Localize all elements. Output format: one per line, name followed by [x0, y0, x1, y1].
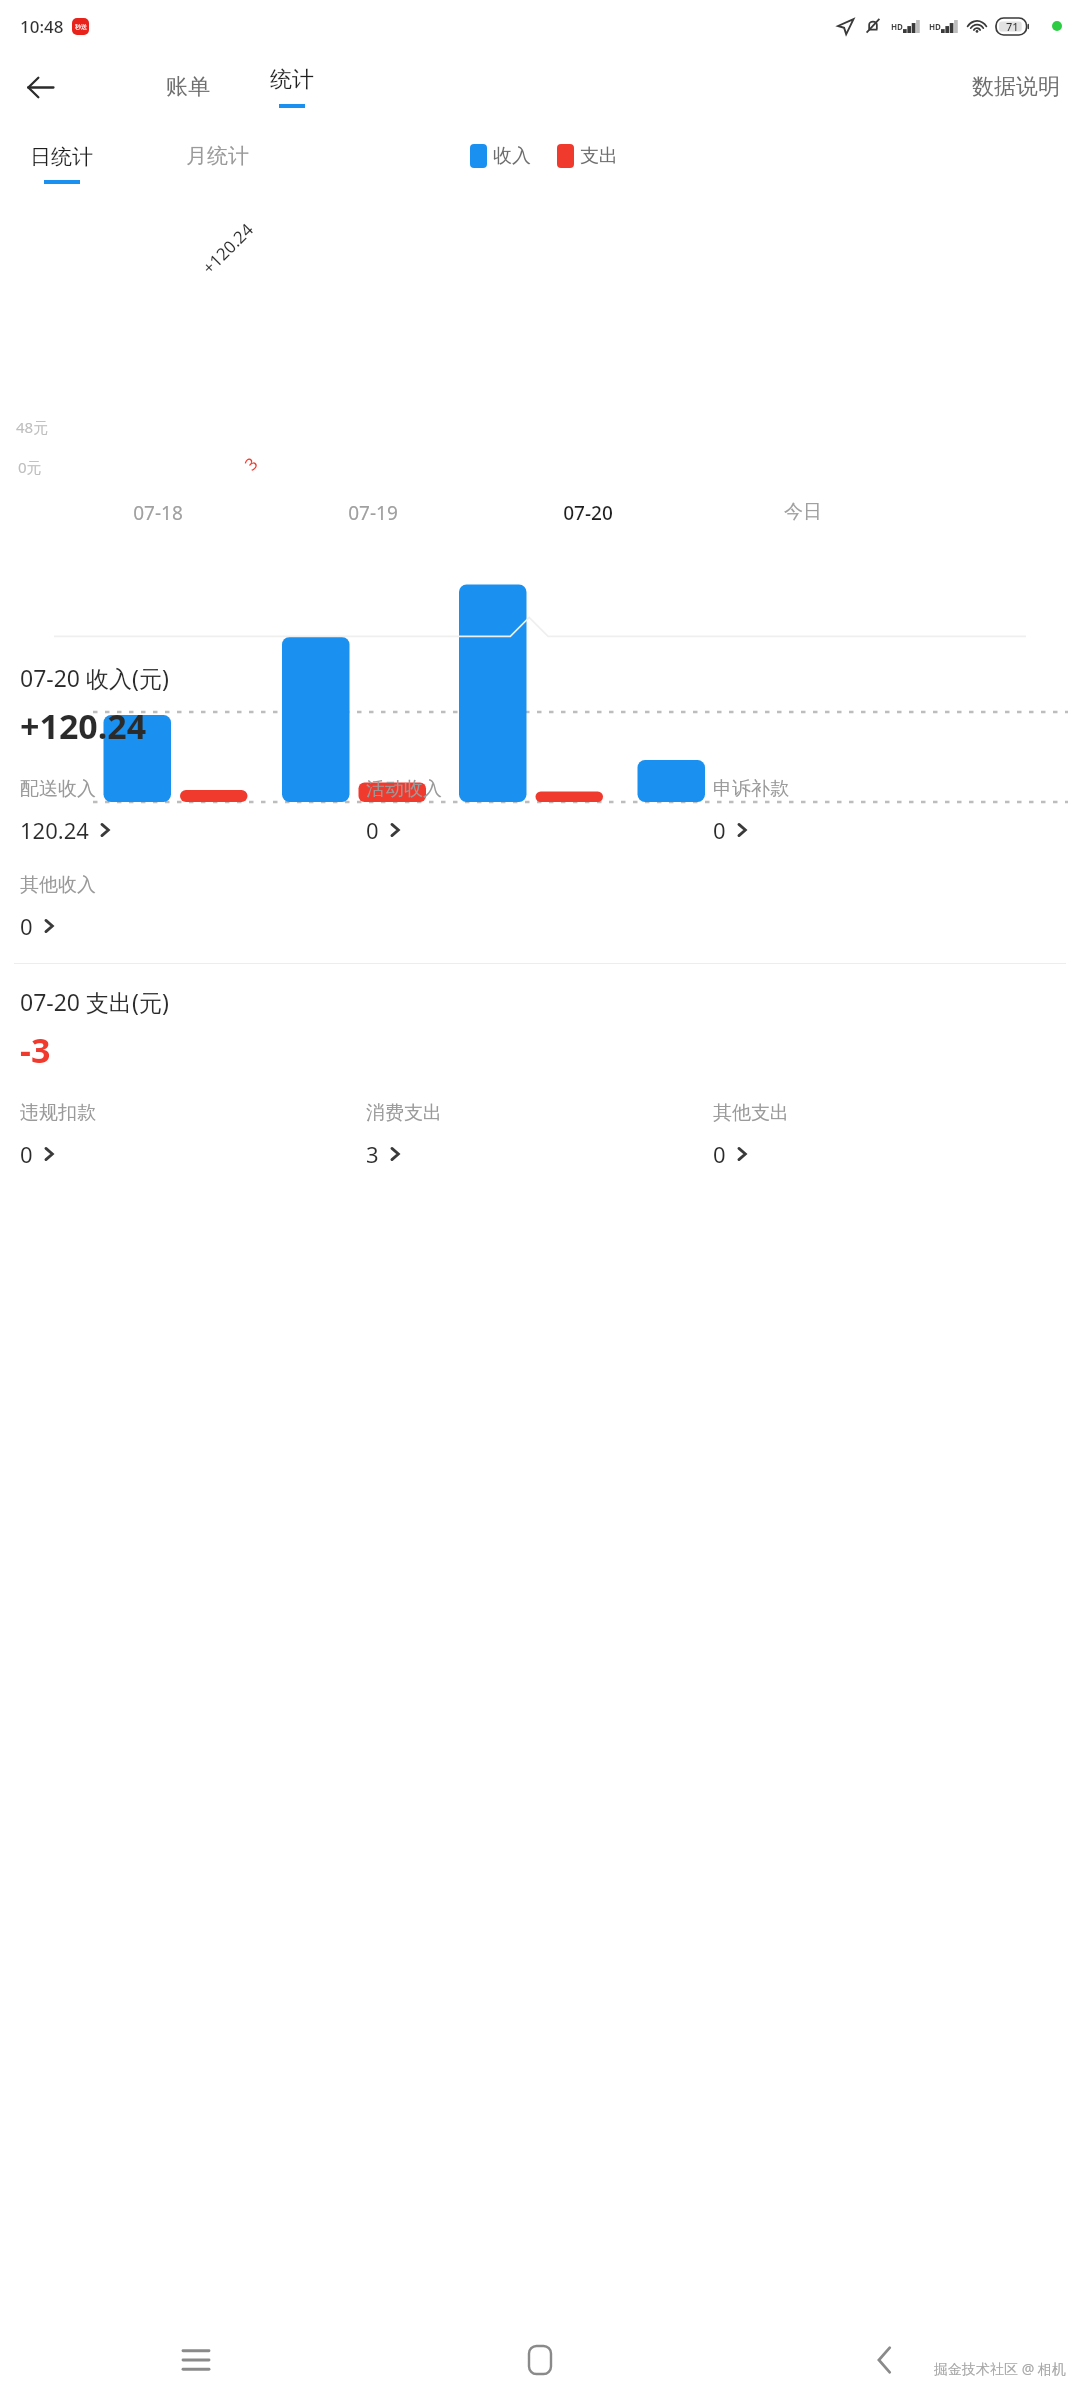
staticText: 0 [20, 1139, 33, 1169]
button[interactable]: 07-20 [480, 500, 695, 526]
button[interactable]: 月统计 [180, 137, 255, 175]
button[interactable]: Back [856, 2332, 912, 2388]
staticText: 71 [1006, 19, 1019, 34]
button[interactable]: 其他收入 [20, 871, 366, 943]
staticText: 消费支出 [366, 1101, 442, 1125]
staticText: 0 [713, 1139, 726, 1169]
button[interactable]: 配送收入 [20, 775, 366, 847]
staticText: 0 [713, 815, 726, 845]
button[interactable]: 账单 [152, 65, 224, 109]
staticText: +120.24 [197, 218, 258, 279]
staticText: 申诉补款 [713, 777, 789, 801]
staticText: 今日 [784, 500, 822, 524]
button[interactable]: Recent apps [168, 2332, 224, 2388]
staticText: 48元 [16, 417, 49, 437]
staticText: 掘金技术社区 @ 相机 [934, 2359, 1066, 2378]
staticText: 07-19 [348, 500, 398, 526]
staticText: 3 [239, 452, 263, 475]
staticText: 违规扣款 [20, 1101, 96, 1125]
button[interactable]: 日统计 [30, 144, 93, 184]
button[interactable]: 活动收入 [366, 775, 713, 847]
staticText: HD [891, 21, 903, 32]
staticText: 支出 [580, 144, 618, 168]
button[interactable]: 数据说明 [964, 65, 1068, 109]
staticText: +120.24 [20, 703, 147, 749]
staticText: 活动收入 [366, 777, 442, 801]
staticText: 07-20 收入(元) [20, 662, 169, 693]
staticText: 120.24 [20, 815, 89, 845]
staticText: 10:48 [20, 15, 64, 38]
staticText: 其他收入 [20, 873, 96, 897]
button[interactable]: 07-19 [265, 500, 480, 526]
staticText: 其他支出 [713, 1101, 789, 1125]
staticText: 数据说明 [972, 73, 1060, 101]
staticText: 07-20 支出(元) [20, 986, 169, 1017]
staticText: 收入 [493, 144, 531, 168]
button[interactable]: 统计 [270, 66, 314, 108]
staticText: 统计 [270, 66, 314, 94]
button[interactable]: 申诉补款 [713, 775, 1060, 847]
staticText: 配送收入 [20, 777, 96, 801]
staticText: HD [929, 21, 941, 32]
staticText: 0 [366, 815, 379, 845]
staticText: 0元 [18, 457, 42, 477]
staticText: 3 [366, 1139, 379, 1169]
staticText: -3 [20, 1027, 51, 1073]
button[interactable]: 07-18 [50, 500, 265, 526]
button[interactable]: 其他支出 [713, 1099, 1060, 1171]
staticText: 月统计 [186, 143, 249, 169]
button[interactable]: Home [512, 2332, 568, 2388]
staticText: 07-20 [563, 500, 613, 526]
button[interactable]: 违规扣款 [20, 1099, 366, 1171]
staticText: 秒送 [75, 23, 87, 31]
staticText: 账单 [166, 73, 210, 101]
staticText: 日统计 [30, 144, 93, 170]
staticText: 0 [20, 911, 33, 941]
button[interactable]: 今日 [695, 500, 910, 524]
button[interactable]: Back [16, 63, 64, 111]
staticText: 07-18 [133, 500, 183, 526]
button[interactable]: 消费支出 [366, 1099, 713, 1171]
